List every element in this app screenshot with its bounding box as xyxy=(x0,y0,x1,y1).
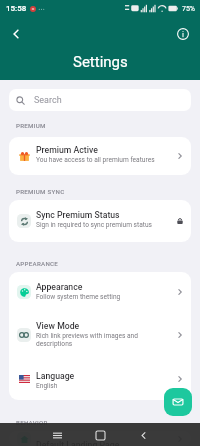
button[interactable]: Language xyxy=(9,358,191,400)
staticText: Appearance xyxy=(36,282,83,292)
staticText: Sync Premium Status xyxy=(36,210,120,220)
staticText: Language xyxy=(36,371,75,381)
button[interactable]: Default Landing Page xyxy=(9,431,191,446)
staticText: Sign in required to sync premium status xyxy=(36,221,152,229)
staticText: Settings xyxy=(73,53,128,71)
button[interactable]: Info xyxy=(171,22,195,46)
staticText: Default Landing Page xyxy=(36,440,120,446)
staticText: 75% xyxy=(182,5,195,13)
staticText: Follow system theme setting xyxy=(36,293,121,301)
staticText: PREMIUM SYNC xyxy=(16,188,65,195)
staticText: Rich link previews with images and descr… xyxy=(36,332,165,348)
button[interactable]: Back xyxy=(134,426,152,444)
button[interactable]: Back xyxy=(4,22,28,46)
staticText: Search xyxy=(34,95,62,106)
button[interactable]: View Mode xyxy=(9,312,191,358)
staticText: English xyxy=(36,382,58,390)
staticText: 15:58 xyxy=(6,4,27,13)
button[interactable]: Premium Active xyxy=(9,137,191,175)
staticText: APPEARANCE xyxy=(16,260,59,267)
staticText: PREMIUM xyxy=(16,122,46,129)
button[interactable]: Home xyxy=(91,426,109,444)
button[interactable]: Search xyxy=(9,89,191,111)
button[interactable]: Appearance xyxy=(9,272,191,312)
staticText: BEHAVIOR xyxy=(16,419,48,426)
button[interactable]: Sync Premium Status xyxy=(9,200,191,242)
staticText: You have access to all premium features xyxy=(36,156,155,164)
button[interactable]: Recents xyxy=(48,426,66,444)
staticText: Premium Active xyxy=(36,145,98,155)
staticText: View Mode xyxy=(36,321,80,331)
button[interactable]: Compose message xyxy=(164,388,192,416)
